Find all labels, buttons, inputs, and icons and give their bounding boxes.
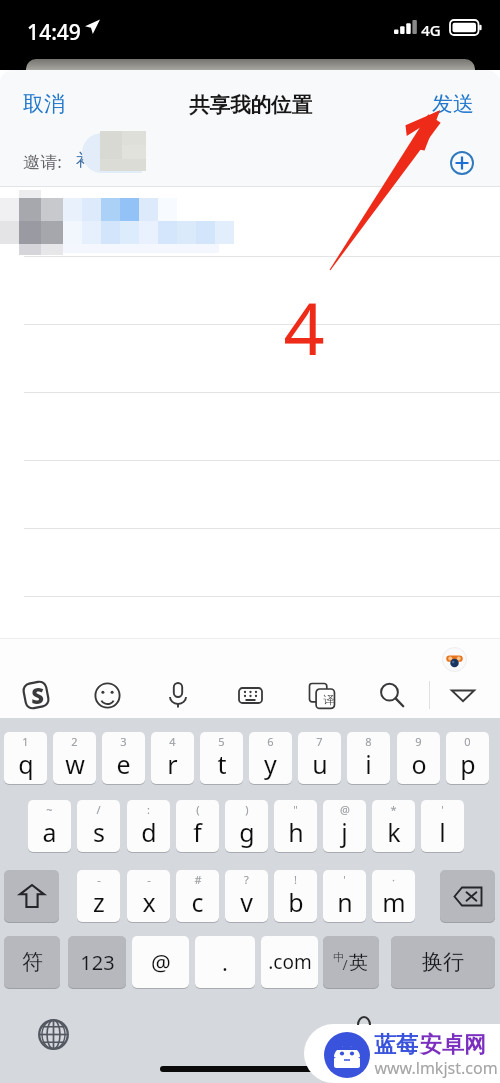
- button[interactable]: 0: [446, 732, 489, 784]
- staticText: 符: [22, 949, 43, 975]
- button[interactable]: (: [176, 800, 219, 852]
- staticText: f: [193, 815, 202, 849]
- staticText: 4: [283, 278, 325, 376]
- button[interactable]: 6: [249, 732, 292, 784]
- button[interactable]: Symbols: [4, 936, 60, 988]
- button[interactable]: Switch input language: [36, 1017, 70, 1051]
- staticText: 1: [22, 734, 29, 749]
- staticText: 2: [71, 734, 78, 749]
- button[interactable]: 9: [397, 732, 440, 784]
- button[interactable]: Translate: [299, 673, 343, 717]
- staticText: g: [239, 815, 255, 849]
- button[interactable]: 5: [200, 732, 243, 784]
- button[interactable]: 3: [102, 732, 145, 784]
- staticText: @: [340, 802, 350, 817]
- staticText: o: [411, 747, 427, 781]
- staticText: 0: [464, 734, 471, 749]
- staticText: 123: [80, 949, 115, 976]
- staticText: 换行: [422, 949, 464, 975]
- button[interactable]: Sogou input: [14, 673, 58, 717]
- staticText: ": [293, 802, 298, 817]
- button[interactable]: ·: [372, 870, 415, 922]
- button[interactable]: ': [421, 800, 464, 852]
- staticText: /: [342, 955, 348, 974]
- staticText: 5: [218, 734, 225, 749]
- button[interactable]: .com: [261, 936, 318, 988]
- button[interactable]: !: [274, 870, 317, 922]
- button[interactable]: Return: [391, 936, 495, 988]
- button[interactable]: .: [195, 936, 255, 988]
- staticText: e: [116, 747, 131, 781]
- button[interactable]: Emoji: [85, 673, 129, 717]
- button[interactable]: ): [225, 800, 268, 852]
- button[interactable]: @: [132, 936, 189, 988]
- button[interactable]: 8: [347, 732, 390, 784]
- button[interactable]: 取消: [7, 79, 81, 129]
- staticText: d: [141, 815, 157, 849]
- staticText: #: [194, 872, 202, 887]
- button[interactable]: Hide keyboard: [441, 673, 485, 717]
- staticText: 6: [267, 734, 274, 749]
- staticText: !: [294, 872, 297, 887]
- button[interactable]: ': [323, 870, 366, 922]
- staticText: 英: [349, 951, 368, 975]
- button[interactable]: 1: [4, 732, 47, 784]
- button[interactable]: -: [77, 870, 120, 922]
- staticText: 9: [415, 734, 422, 749]
- button[interactable]: ?: [225, 870, 268, 922]
- staticText: h: [288, 815, 304, 849]
- staticText: 14:49: [27, 18, 81, 47]
- staticText: n: [337, 885, 353, 919]
- staticText: 4G: [421, 20, 441, 40]
- staticText: 7: [316, 734, 323, 749]
- button[interactable]: 2: [53, 732, 96, 784]
- staticText: t: [217, 747, 227, 781]
- staticText: 中: [333, 950, 344, 964]
- button[interactable]: 4: [151, 732, 194, 784]
- staticText: s: [93, 815, 105, 849]
- staticText: (: [196, 802, 200, 817]
- staticText: ·: [392, 872, 395, 887]
- staticText: y: [264, 747, 277, 781]
- button[interactable]: Search: [370, 673, 414, 717]
- staticText: 蓝莓: [374, 1031, 418, 1059]
- button[interactable]: Numbers: [68, 936, 126, 988]
- staticText: p: [460, 747, 476, 781]
- staticText: v: [240, 885, 253, 919]
- staticText: 3: [120, 734, 127, 749]
- staticText: -: [97, 872, 101, 887]
- staticText: r: [167, 747, 178, 781]
- button[interactable]: Chinese English toggle: [323, 936, 379, 988]
- button[interactable]: *: [372, 800, 415, 852]
- staticText: ~: [46, 802, 53, 817]
- staticText: a: [42, 815, 57, 849]
- staticText: i: [365, 747, 372, 781]
- staticText: l: [439, 815, 446, 849]
- button[interactable]: 发送: [416, 79, 490, 129]
- staticText: j: [341, 815, 348, 849]
- button[interactable]: Backspace: [440, 870, 495, 922]
- button[interactable]: Shift: [4, 870, 59, 922]
- button[interactable]: Sogou mascot: [441, 646, 467, 672]
- staticText: b: [288, 885, 304, 919]
- staticText: q: [18, 747, 34, 781]
- staticText: ': [343, 872, 346, 887]
- staticText: 共享我的位置: [189, 92, 312, 118]
- button[interactable]: /: [77, 800, 120, 852]
- staticText: k: [387, 815, 401, 849]
- staticText: m: [382, 885, 406, 919]
- button[interactable]: Keyboard layout: [228, 673, 272, 717]
- staticText: 安卓网: [420, 1031, 486, 1059]
- button[interactable]: :: [127, 800, 170, 852]
- button[interactable]: 7: [298, 732, 341, 784]
- button[interactable]: @: [323, 800, 366, 852]
- staticText: 发送: [432, 91, 474, 117]
- button[interactable]: ": [274, 800, 317, 852]
- button[interactable]: -: [127, 870, 170, 922]
- staticText: /: [96, 802, 101, 817]
- button[interactable]: #: [176, 870, 219, 922]
- staticText: w: [65, 747, 85, 781]
- button[interactable]: Add contact: [447, 148, 477, 178]
- button[interactable]: ~: [28, 800, 71, 852]
- button[interactable]: Voice input: [156, 673, 200, 717]
